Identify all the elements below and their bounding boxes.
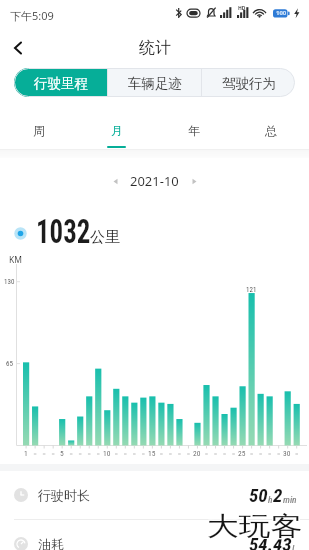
staticText: 大玩客 <box>208 511 303 544</box>
staticText: 公里 <box>90 228 120 247</box>
staticText: 大玩客 <box>207 510 302 543</box>
staticText: 65 <box>6 360 13 368</box>
staticText: 大玩客 <box>206 509 301 542</box>
button[interactable]: 行驶里程 <box>14 68 107 97</box>
button[interactable]: 车辆足迹 <box>108 68 201 97</box>
button[interactable]: Next month <box>185 172 203 190</box>
staticText: 大玩客 <box>208 509 303 542</box>
staticText: 车辆足迹 <box>128 75 182 92</box>
staticText: 30 <box>283 449 291 458</box>
staticText: 25 <box>238 449 246 458</box>
staticText: 2021-10 <box>130 172 179 190</box>
button[interactable]: Previous month <box>106 172 124 190</box>
staticText: 大玩客 <box>206 511 301 544</box>
staticText: 1 <box>24 449 28 458</box>
staticText: 行驶里程 <box>34 75 88 92</box>
staticText: 54.43 <box>249 533 292 550</box>
staticText: 大玩客 <box>207 511 302 544</box>
staticText: 统计 <box>139 38 171 58</box>
staticText: 总 <box>265 123 277 138</box>
button[interactable]: 月 <box>78 110 155 150</box>
button[interactable]: Back <box>4 34 32 62</box>
staticText: 大玩客 <box>206 510 301 543</box>
staticText: 1032 <box>36 212 91 246</box>
staticText: 年 <box>188 123 200 138</box>
staticText: 行驶时长 <box>38 487 90 503</box>
button[interactable]: 总 <box>232 110 309 150</box>
staticText: 驾驶行为 <box>222 75 276 92</box>
button[interactable]: 油耗 <box>14 520 297 550</box>
staticText: L <box>292 543 297 550</box>
staticText: 100 <box>276 9 287 17</box>
button[interactable]: 驾驶行为 <box>202 68 295 97</box>
staticText: HD <box>238 5 246 12</box>
staticText: 2 <box>273 484 283 506</box>
staticText: 121 <box>246 286 257 294</box>
staticText: 下午5:09 <box>10 8 54 23</box>
staticText: 大玩客 <box>208 510 303 543</box>
button[interactable]: 周 <box>0 110 78 150</box>
staticText: 月 <box>111 123 123 138</box>
staticText: 10 <box>103 449 111 458</box>
staticText: h <box>268 494 273 505</box>
staticText: 50 <box>249 484 268 506</box>
staticText: 5 <box>60 449 64 458</box>
staticText: 大玩客 <box>207 509 302 542</box>
staticText: KM <box>9 254 22 266</box>
staticText: min <box>283 494 297 505</box>
button[interactable]: 行驶时长 <box>14 471 297 519</box>
staticText: 周 <box>33 123 45 138</box>
staticText: 130 <box>4 278 15 286</box>
button[interactable]: 年 <box>155 110 232 150</box>
staticText: 20 <box>193 449 201 458</box>
staticText: 15 <box>148 449 156 458</box>
staticText: 油耗 <box>38 536 64 550</box>
